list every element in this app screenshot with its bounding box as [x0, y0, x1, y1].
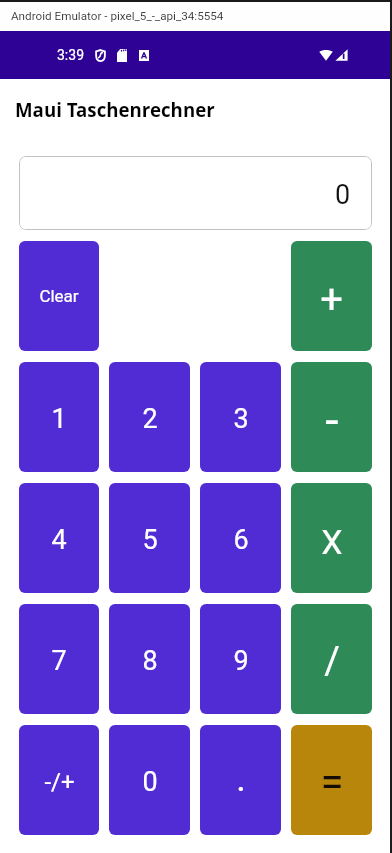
- button[interactable]: 6: [200, 483, 281, 593]
- staticText: Clear: [39, 286, 79, 306]
- button[interactable]: +: [291, 241, 372, 351]
- button[interactable]: X: [291, 483, 372, 593]
- staticText: 4: [51, 524, 67, 556]
- staticText: 0: [142, 766, 158, 798]
- staticText: 3:39: [57, 47, 84, 63]
- staticText: 8: [142, 645, 158, 677]
- other: SD card: [117, 49, 127, 62]
- staticText: 6: [233, 524, 249, 556]
- button[interactable]: .: [200, 725, 281, 835]
- staticText: +: [320, 276, 343, 323]
- staticText: 5: [142, 524, 158, 556]
- button[interactable]: 5: [109, 483, 190, 593]
- button[interactable]: /: [291, 604, 372, 714]
- button[interactable]: -: [291, 362, 372, 472]
- button[interactable]: =: [291, 725, 372, 835]
- other: Security: [95, 49, 106, 62]
- button[interactable]: 8: [109, 604, 190, 714]
- button[interactable]: 2: [109, 362, 190, 472]
- button[interactable]: 3: [200, 362, 281, 472]
- button[interactable]: 9: [200, 604, 281, 714]
- button[interactable]: 7: [19, 604, 99, 714]
- staticText: -: [325, 392, 339, 448]
- staticText: 0: [335, 179, 351, 211]
- staticText: -/+: [44, 768, 75, 796]
- other: Mobile signal: [335, 49, 348, 61]
- button[interactable]: -/+: [19, 725, 99, 835]
- staticText: 7: [51, 645, 67, 677]
- staticText: 1: [51, 403, 67, 435]
- button[interactable]: 1: [19, 362, 99, 472]
- other: Keyboard layout: [139, 50, 149, 61]
- other: Wi-Fi: [319, 50, 333, 61]
- staticText: Android Emulator - pixel_5_-_api_34:5554: [11, 9, 224, 23]
- staticText: 9: [233, 645, 249, 677]
- staticText: X: [321, 522, 343, 562]
- staticText: 3: [233, 403, 249, 435]
- staticText: =: [320, 757, 344, 806]
- staticText: Maui Taschenrechner: [15, 97, 215, 122]
- button[interactable]: Clear: [19, 241, 99, 351]
- button[interactable]: 0: [109, 725, 190, 835]
- staticText: .: [236, 758, 246, 800]
- button[interactable]: 4: [19, 483, 99, 593]
- button[interactable]: 0: [19, 156, 372, 230]
- staticText: /: [324, 639, 340, 684]
- staticText: 2: [142, 403, 158, 435]
